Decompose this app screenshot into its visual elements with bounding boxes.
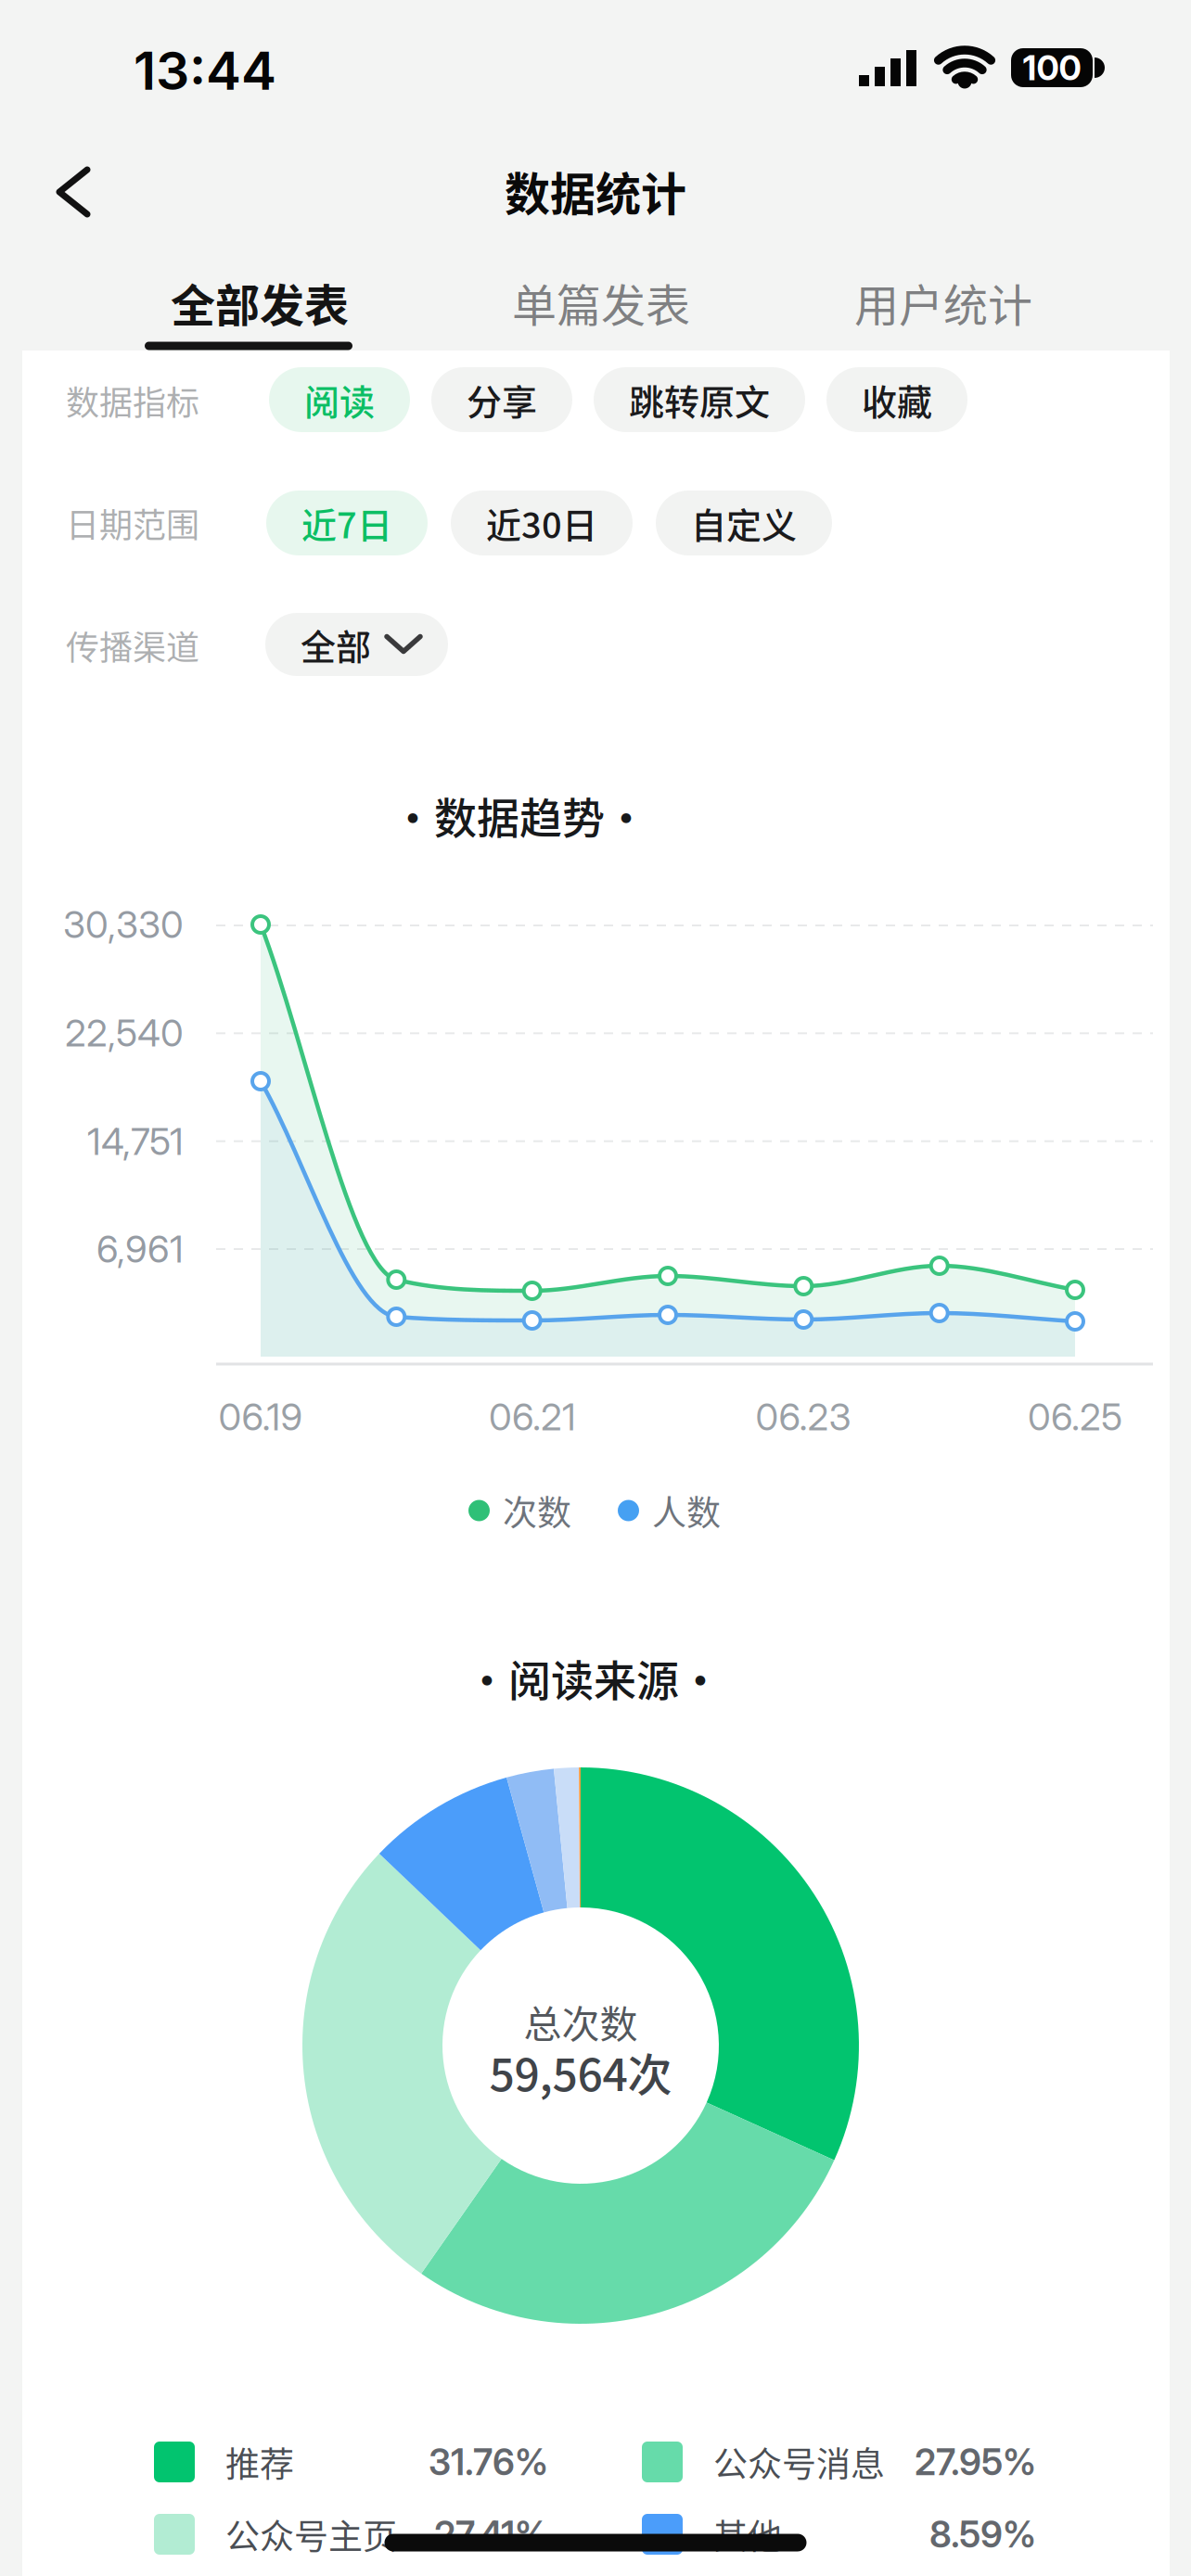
- staticText: 收藏: [862, 374, 932, 425]
- staticText: ·阅读来源·: [466, 1647, 722, 1708]
- staticText: 06.19: [218, 1394, 303, 1439]
- staticText: 日期范围: [66, 499, 199, 547]
- staticText: 8.59%: [929, 2512, 1036, 2556]
- staticText: 跳转原文: [629, 374, 770, 425]
- staticText: 13:44: [134, 38, 276, 102]
- staticText: 阅读: [304, 374, 375, 425]
- staticText: 06.21: [489, 1394, 576, 1439]
- button[interactable]: 分享: [431, 367, 572, 432]
- button[interactable]: 收藏: [826, 367, 967, 432]
- staticText: 公众号主页: [225, 2509, 397, 2559]
- staticText: 人数: [652, 1486, 721, 1535]
- button[interactable]: 返回: [17, 136, 128, 248]
- staticText: 14,751: [87, 1119, 184, 1164]
- staticText: 公众号消息: [713, 2437, 885, 2487]
- staticText: 31.76%: [429, 2440, 548, 2484]
- button[interactable]: 全部: [265, 613, 448, 676]
- staticText: 27.41%: [434, 2512, 548, 2556]
- staticText: 30,330: [63, 902, 184, 947]
- button[interactable]: 近30日: [451, 491, 633, 555]
- staticText: 100: [1023, 47, 1081, 88]
- staticText: 其他: [713, 2509, 782, 2559]
- button[interactable]: 自定义: [656, 491, 832, 555]
- staticText: 近7日: [301, 497, 392, 548]
- staticText: 22,540: [65, 1011, 184, 1055]
- staticText: 全部: [301, 619, 371, 670]
- staticText: 06.25: [1028, 1394, 1122, 1439]
- staticText: 次数: [503, 1486, 571, 1535]
- staticText: 27.95%: [915, 2440, 1036, 2484]
- staticText: 总次数: [524, 1994, 638, 2049]
- staticText: 自定义: [691, 497, 797, 548]
- staticText: 近30日: [486, 497, 597, 548]
- staticText: ·数据趋势·: [391, 784, 647, 846]
- staticText: 用户统计: [854, 270, 1032, 334]
- button[interactable]: 近7日: [266, 491, 428, 555]
- staticText: 数据统计: [505, 158, 686, 224]
- staticText: 06.23: [756, 1394, 851, 1439]
- staticText: 全部发表: [171, 270, 349, 334]
- staticText: 传播渠道: [66, 621, 199, 670]
- button[interactable]: 阅读: [269, 367, 410, 432]
- staticText: 数据指标: [66, 376, 199, 425]
- button[interactable]: 跳转原文: [594, 367, 805, 432]
- staticText: 6,961: [96, 1227, 184, 1271]
- button[interactable]: 单篇发表: [505, 261, 698, 344]
- button[interactable]: 全部发表: [163, 261, 356, 344]
- staticText: 59,564次: [489, 2039, 672, 2104]
- button[interactable]: 用户统计: [847, 261, 1040, 344]
- staticText: 分享: [467, 374, 537, 425]
- staticText: 单篇发表: [512, 270, 690, 334]
- staticText: 推荐: [225, 2437, 294, 2487]
